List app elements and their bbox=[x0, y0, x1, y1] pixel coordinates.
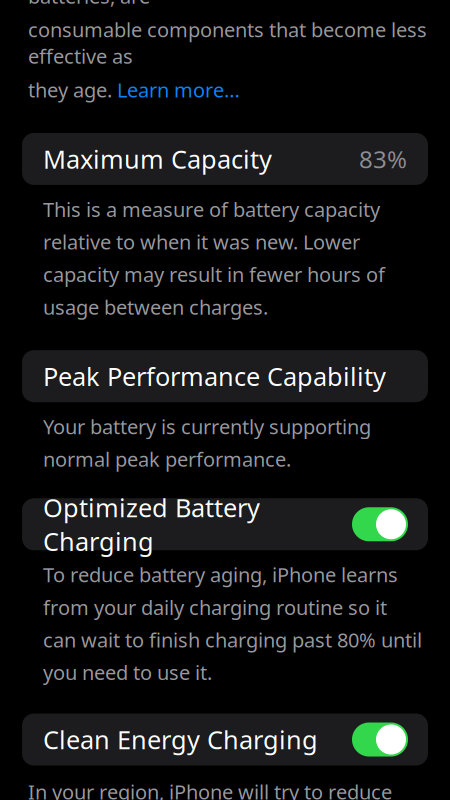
staticText: 83% bbox=[359, 143, 407, 175]
staticText: To reduce battery aging, iPhone learns f… bbox=[43, 561, 422, 685]
button[interactable]: Optimized Battery Charging bbox=[22, 498, 428, 550]
staticText: In your region, iPhone will try to reduc… bbox=[28, 778, 416, 800]
button[interactable]: Maximum Capacity bbox=[22, 133, 428, 185]
staticText: Maximum Capacity bbox=[43, 142, 272, 176]
staticText: This is a measure of battery capacity re… bbox=[43, 196, 385, 320]
staticText: Optimized Battery Charging bbox=[43, 491, 260, 558]
button[interactable]: Peak Performance Capability bbox=[22, 350, 428, 402]
button[interactable]: Learn more… bbox=[117, 76, 240, 103]
button[interactable]: Clean Energy Charging bbox=[22, 713, 428, 765]
staticText: Phone batteries, like all rechargeable b… bbox=[28, 0, 369, 9]
staticText: consumable components that become less e… bbox=[28, 16, 427, 69]
staticText: Your battery is currently supporting nor… bbox=[43, 413, 371, 472]
staticText: Clean Energy Charging bbox=[43, 723, 318, 756]
staticText: Learn more… bbox=[117, 76, 240, 103]
staticText: Peak Performance Capability bbox=[43, 359, 386, 393]
staticText: they age. bbox=[28, 76, 117, 103]
